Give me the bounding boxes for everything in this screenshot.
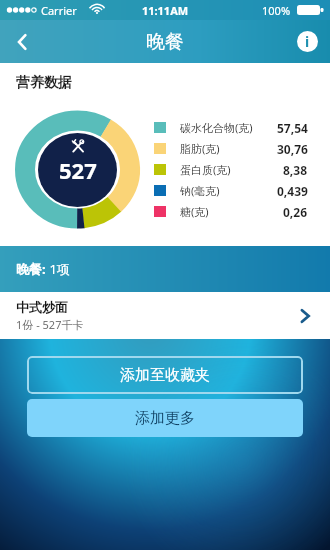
staticText: 添加更多 bbox=[135, 409, 195, 428]
staticText: 晚餐 bbox=[146, 30, 184, 54]
staticText: 糖(克) bbox=[180, 204, 209, 219]
button[interactable]: Back bbox=[0, 20, 46, 63]
staticText: 蛋白质(克) bbox=[180, 162, 231, 177]
staticText: 脂肪(克) bbox=[180, 141, 220, 156]
staticText: 57,54 bbox=[277, 120, 308, 136]
button[interactable]: 中式炒面 bbox=[0, 292, 330, 339]
staticText: 碳水化合物(克) bbox=[180, 120, 253, 135]
staticText: 添加至收藏夹 bbox=[120, 366, 210, 385]
staticText: 营养数据 bbox=[16, 74, 72, 92]
staticText: 100% bbox=[262, 3, 291, 18]
staticText: 0,26 bbox=[283, 204, 308, 220]
staticText: 11:11AM bbox=[0, 3, 330, 18]
staticText: 晚餐: bbox=[16, 260, 46, 278]
button[interactable]: 添加更多 bbox=[27, 399, 303, 437]
staticText: Carrier bbox=[41, 3, 77, 18]
staticText: 1份 - 527千卡 bbox=[16, 317, 84, 332]
staticText: 钠(毫克) bbox=[180, 183, 220, 198]
staticText: 0,439 bbox=[277, 183, 308, 199]
button[interactable]: Information bbox=[284, 20, 330, 63]
staticText: 30,76 bbox=[277, 141, 308, 157]
staticText: 1项 bbox=[46, 260, 70, 278]
staticText: i bbox=[305, 32, 310, 51]
staticText: 中式炒面 bbox=[16, 299, 68, 315]
staticText: 8,38 bbox=[283, 162, 308, 178]
staticText: 527 bbox=[59, 155, 97, 185]
button[interactable]: 添加至收藏夹 bbox=[27, 356, 303, 394]
